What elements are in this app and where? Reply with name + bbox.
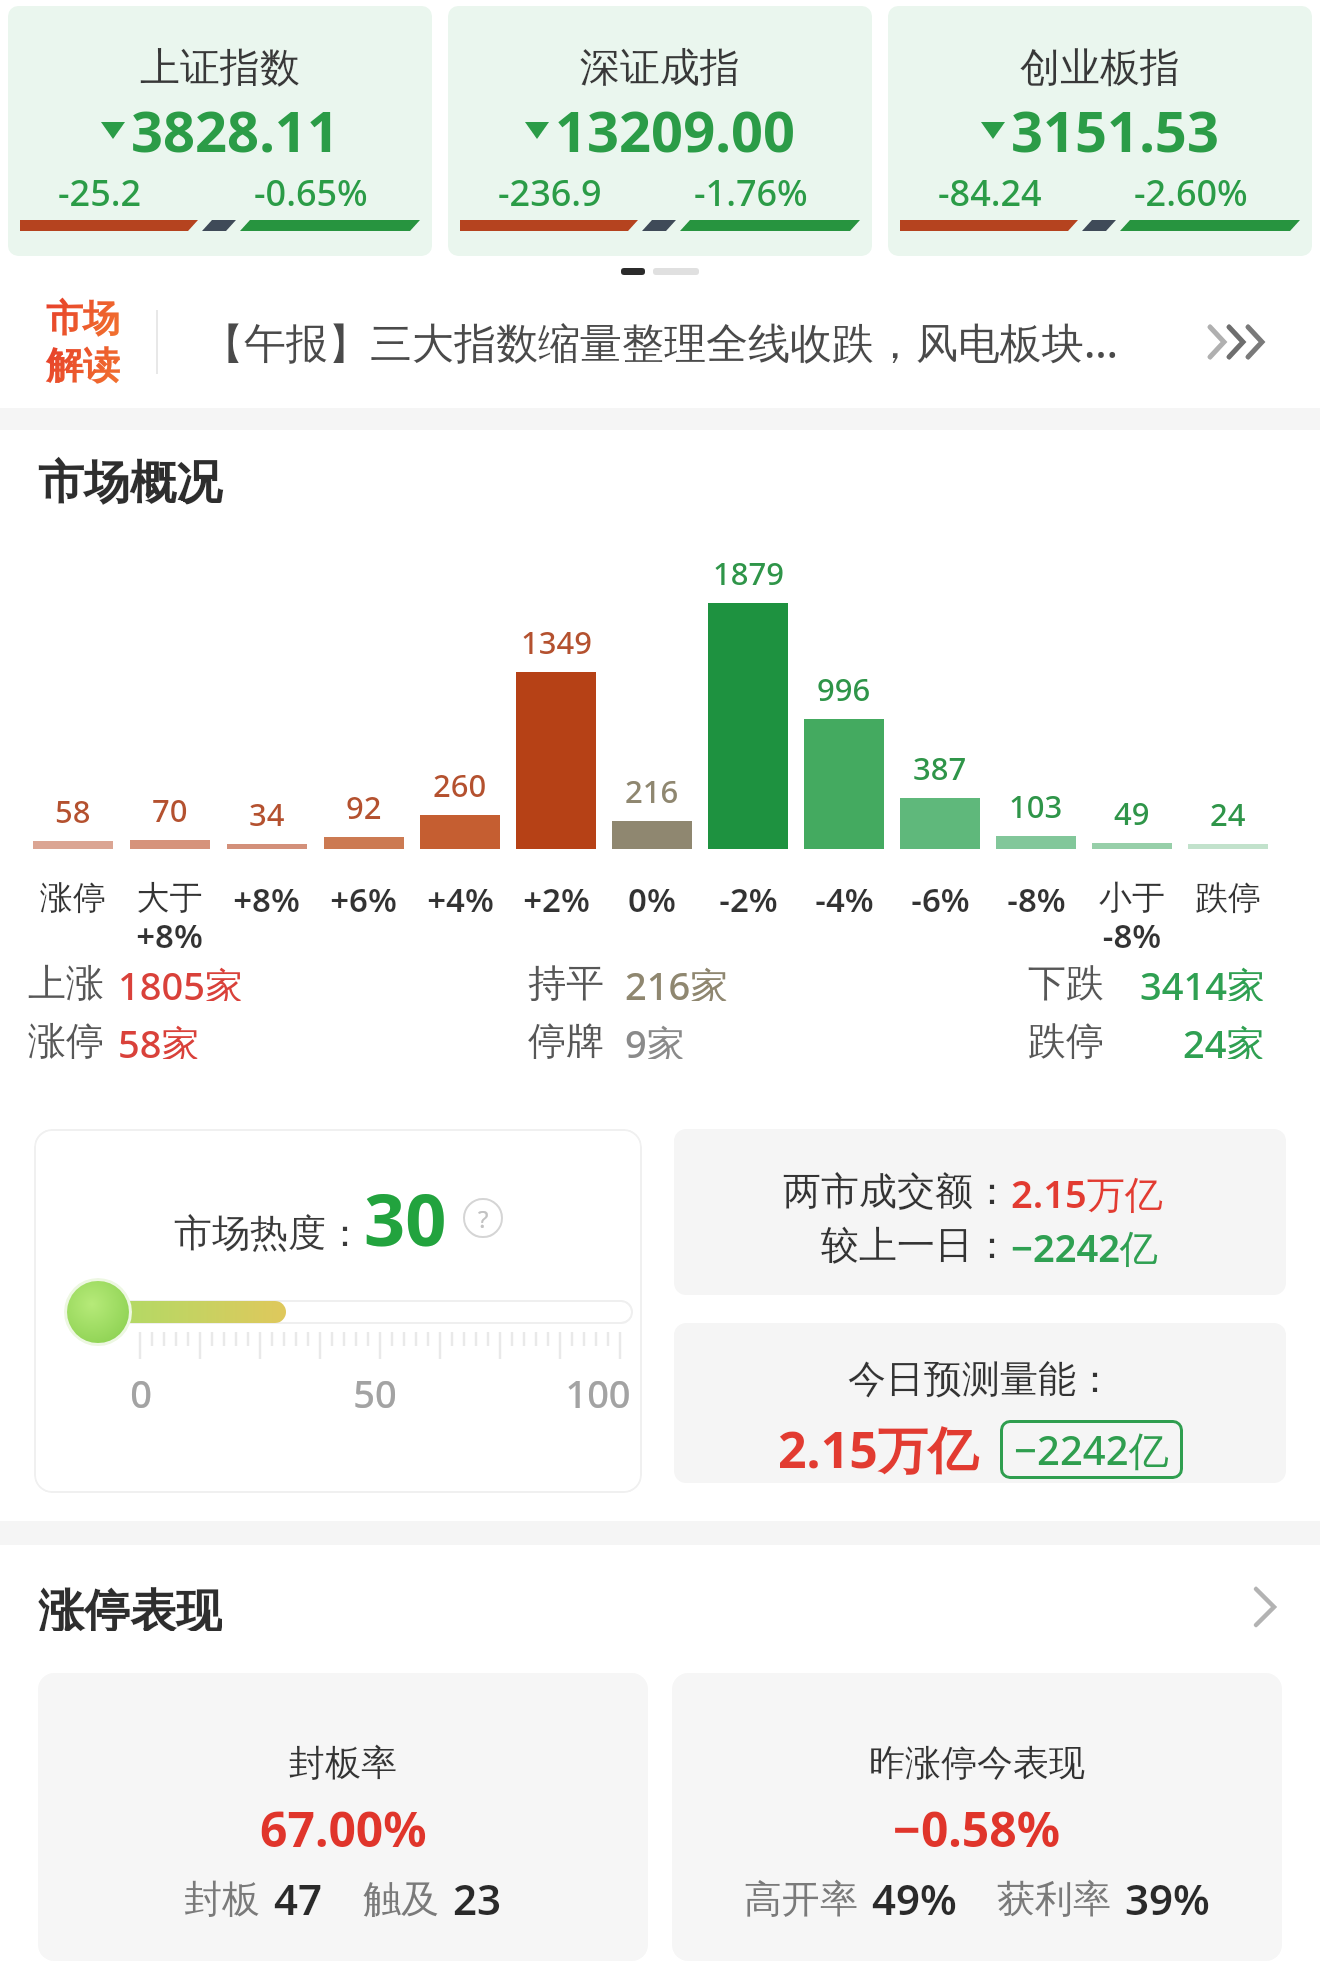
staticText: 高开率: [744, 1875, 858, 1923]
staticText: 大于 +8%: [136, 877, 203, 955]
staticText: ?: [478, 1202, 489, 1235]
button[interactable]: 昨涨停今表现: [672, 1673, 1282, 1961]
staticText: -2%: [719, 877, 778, 922]
staticText: 30: [364, 1169, 447, 1267]
staticText: -84.24: [938, 168, 1042, 217]
staticText: -4%: [815, 877, 874, 922]
staticText: 49%: [872, 1870, 957, 1927]
staticText: 今日预测量能：: [848, 1355, 1114, 1403]
staticText: 13209.00: [555, 92, 795, 168]
staticText: 70: [152, 789, 188, 831]
staticText: -6%: [911, 877, 970, 922]
staticText: 3828.11: [131, 92, 339, 168]
button[interactable]: 今日预测量能：: [674, 1323, 1286, 1483]
staticText: 涨停: [28, 1017, 104, 1059]
staticText: 跌停: [1028, 1017, 1104, 1059]
staticText: 市场热度：: [174, 1209, 364, 1257]
staticText: 获利率: [997, 1875, 1111, 1923]
staticText: −0.58%: [893, 1796, 1061, 1861]
staticText: 3151.53: [1011, 92, 1219, 168]
staticText: 涨停: [40, 877, 106, 919]
staticText: 67.00%: [260, 1796, 427, 1861]
button[interactable]: 市场: [0, 275, 1320, 408]
staticText: 深证成指: [580, 42, 740, 92]
staticText: −2242亿: [1011, 1221, 1158, 1273]
staticText: 跌停: [1195, 877, 1261, 919]
staticText: 58家: [118, 1017, 200, 1059]
staticText: 216家: [625, 959, 729, 1001]
staticText: 涨停表现: [38, 1583, 222, 1631]
staticText: 103: [1009, 785, 1063, 827]
staticText: 创业板指: [1020, 42, 1180, 92]
staticText: 上涨: [28, 959, 104, 1001]
staticText: 92: [346, 786, 382, 828]
staticText: 2.15万亿: [778, 1415, 978, 1483]
staticText: +8%: [233, 877, 300, 922]
staticText: 停牌: [528, 1017, 604, 1059]
staticText: 2.15万亿: [1011, 1167, 1163, 1219]
staticText: -0.65%: [254, 168, 368, 217]
staticText: 封板率: [289, 1740, 397, 1785]
staticText: 47: [274, 1870, 323, 1927]
button[interactable]: 两市成交额：: [674, 1129, 1286, 1295]
staticText: 市场: [46, 295, 120, 342]
staticText: 解读: [46, 342, 120, 389]
staticText: 市场概况: [38, 454, 222, 512]
staticText: 39%: [1125, 1870, 1210, 1927]
staticText: −2242亿: [1014, 1422, 1169, 1477]
staticText: -2.60%: [1134, 168, 1248, 217]
staticText: 【午报】三大指数缩量整理全线收跌，风电板块…: [202, 313, 1119, 370]
staticText: 50: [351, 1367, 399, 1419]
staticText: -236.9: [498, 168, 602, 217]
staticText: 上证指数: [140, 42, 300, 92]
staticText: 49: [1114, 792, 1150, 834]
button[interactable]: 涨停表现: [38, 1583, 1276, 1631]
staticText: 34: [249, 793, 285, 835]
staticText: 3414家: [1140, 959, 1265, 1001]
staticText: 昨涨停今表现: [869, 1740, 1085, 1785]
button[interactable]: 上证指数: [8, 6, 432, 256]
staticText: 0: [129, 1367, 153, 1419]
staticText: 58: [55, 790, 91, 832]
staticText: 24家: [1183, 1017, 1265, 1059]
staticText: 100: [562, 1367, 634, 1419]
staticText: 1349: [521, 621, 592, 663]
staticText: 小于 -8%: [1099, 877, 1165, 955]
staticText: 封板: [184, 1875, 260, 1923]
staticText: 996: [817, 668, 871, 710]
staticText: +4%: [427, 877, 494, 922]
staticText: 持平: [528, 959, 604, 1001]
staticText: +6%: [330, 877, 397, 922]
staticText: 0%: [628, 877, 676, 922]
button[interactable]: 深证成指: [448, 6, 872, 256]
button[interactable]: 创业板指: [888, 6, 1312, 256]
staticText: 触及: [363, 1875, 439, 1923]
staticText: 1879: [713, 552, 784, 594]
staticText: 23: [453, 1870, 502, 1927]
staticText: 24: [1210, 793, 1246, 835]
staticText: -8%: [1007, 877, 1066, 922]
staticText: -25.2: [58, 168, 142, 217]
staticText: 1805家: [118, 959, 243, 1001]
button[interactable]: 市场热度：: [34, 1129, 642, 1493]
staticText: 260: [433, 764, 487, 806]
staticText: 216: [625, 770, 679, 812]
staticText: 387: [913, 747, 967, 789]
staticText: 两市成交额：: [783, 1167, 1011, 1215]
staticText: 9家: [625, 1017, 685, 1059]
staticText: 下跌: [1028, 959, 1104, 1001]
button[interactable]: 封板率: [38, 1673, 648, 1961]
staticText: +2%: [523, 877, 590, 922]
staticText: -1.76%: [694, 168, 808, 217]
staticText: 较上一日：: [821, 1221, 1011, 1269]
